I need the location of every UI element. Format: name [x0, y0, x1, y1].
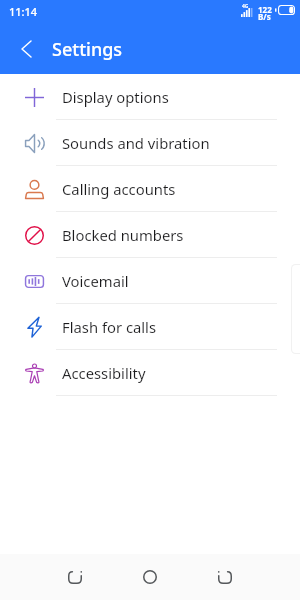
staticText: Accessibility [62, 363, 146, 383]
staticText: Blocked numbers [62, 225, 184, 245]
button[interactable]: Back [55, 557, 95, 597]
button[interactable]: Voicemail [0, 258, 300, 304]
staticText: Calling accounts [62, 179, 176, 199]
button[interactable]: Sounds and vibration [0, 120, 300, 166]
staticText: 122 B/s [258, 4, 272, 22]
staticText: Settings [52, 37, 123, 62]
button[interactable]: Display options [0, 74, 300, 120]
button[interactable]: Home [130, 557, 170, 597]
button[interactable]: Blocked numbers [0, 212, 300, 258]
staticText: Sounds and vibration [62, 133, 210, 153]
button[interactable]: Accessibility [0, 350, 300, 396]
button[interactable]: Navigate up [0, 28, 52, 74]
button[interactable]: Calling accounts [0, 166, 300, 212]
staticText: 4G [242, 3, 249, 10]
staticText: Voicemail [62, 271, 129, 291]
button[interactable]: Flash for calls [0, 304, 300, 350]
staticText: Display options [62, 87, 169, 107]
staticText: 11:14 [9, 4, 38, 19]
staticText: Flash for calls [62, 317, 157, 337]
button[interactable]: Recent apps [205, 557, 245, 597]
